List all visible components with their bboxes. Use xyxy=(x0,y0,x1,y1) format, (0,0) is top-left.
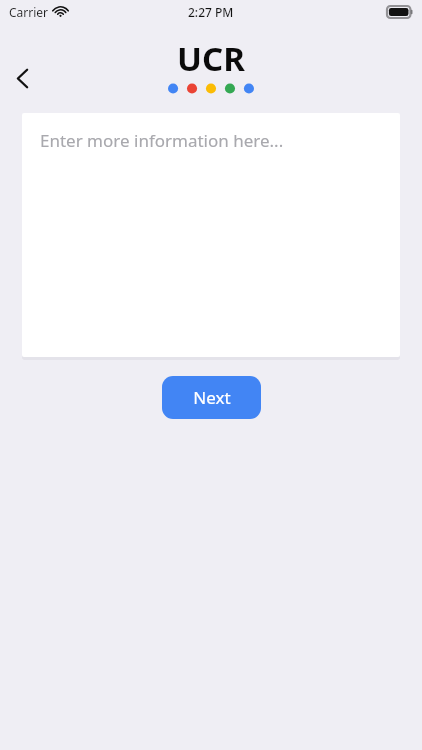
staticText: UCR xyxy=(177,36,245,81)
staticText: Next xyxy=(193,386,231,409)
staticText: Enter more information here... xyxy=(40,129,284,152)
staticText: 2:27 PM xyxy=(188,4,234,20)
button[interactable]: Enter more information here... xyxy=(22,113,400,357)
staticText: Carrier xyxy=(9,4,49,20)
button[interactable]: Next xyxy=(162,376,261,419)
button[interactable]: Back xyxy=(2,58,42,98)
